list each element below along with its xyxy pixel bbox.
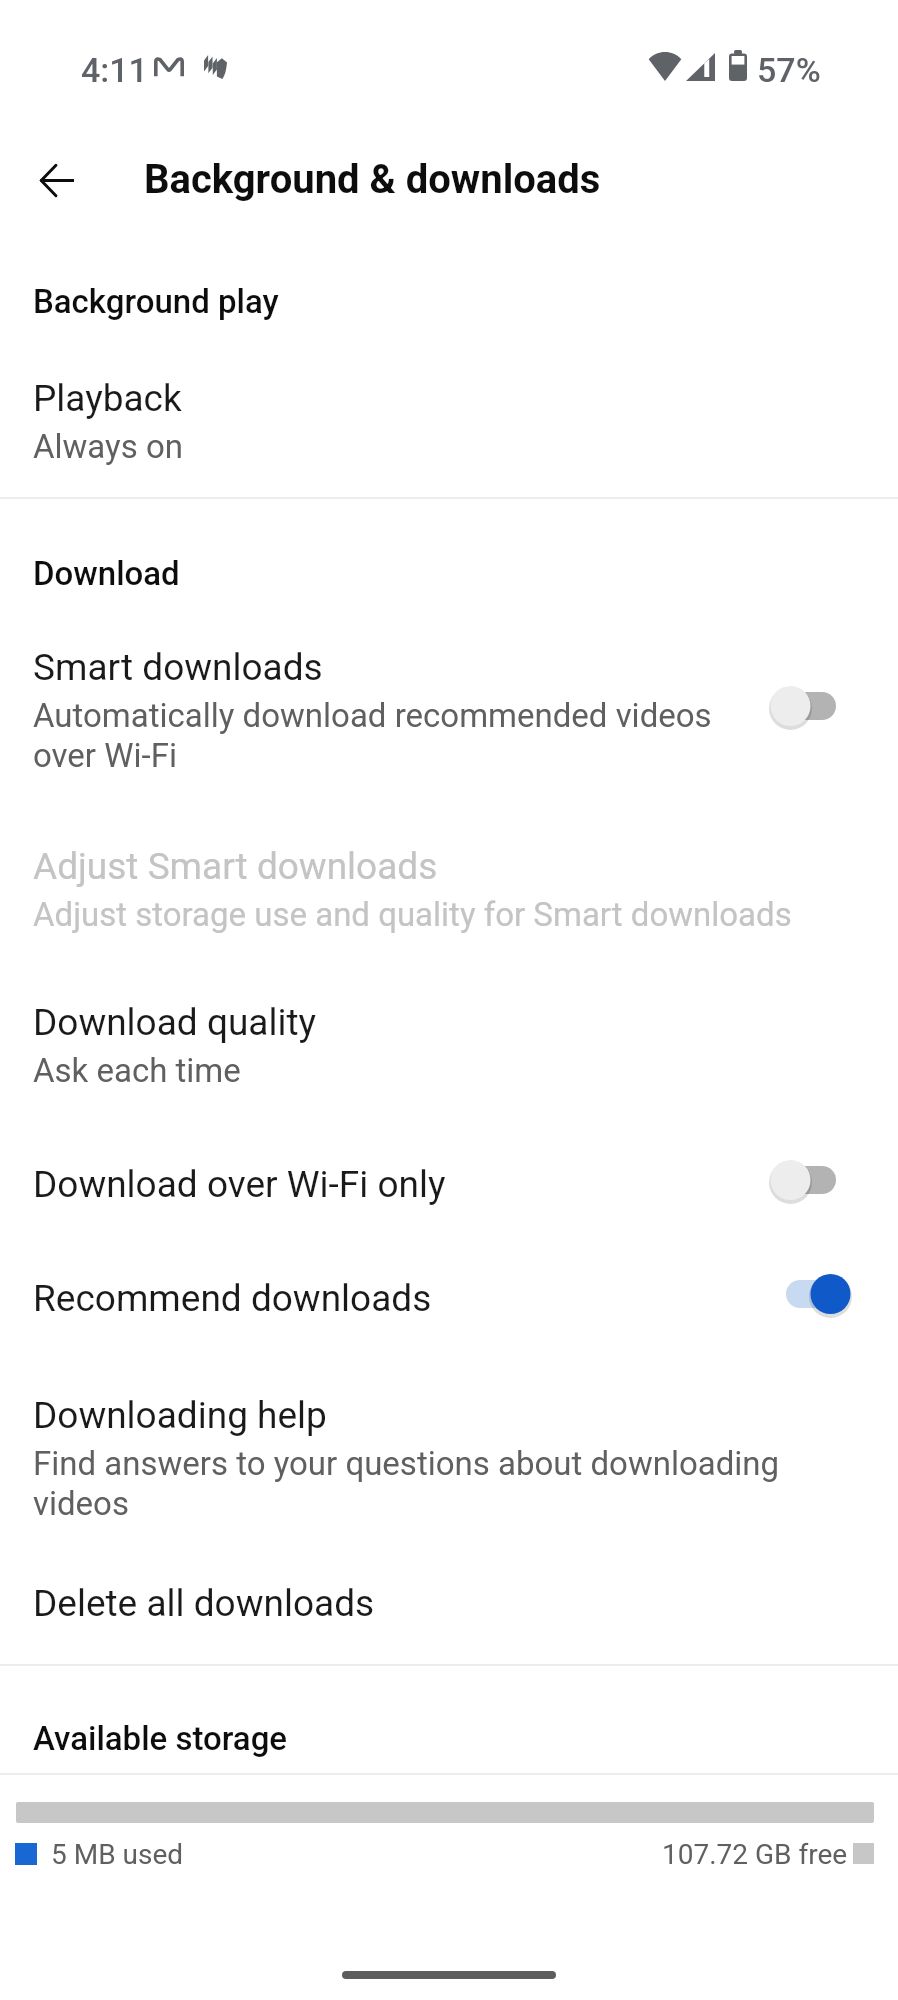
button[interactable]: Playback [0,365,898,471]
staticText: Playback [33,377,182,420]
staticText: 5 MB used [51,1838,184,1871]
button[interactable]: Recommend downloads [0,1265,898,1327]
staticText: 107.72 GB free [662,1838,848,1871]
staticText: Smart downloads [33,646,323,689]
button[interactable]: Smart downloads [0,634,898,780]
staticText: Find answers to your questions about dow… [33,1444,828,1524]
staticText: Download over Wi-Fi only [33,1163,446,1206]
staticText: Adjust Smart downloads [33,845,438,888]
button[interactable]: Toggle on [762,1264,862,1324]
staticText: Adjust storage use and quality for Smart… [33,895,792,934]
staticText: Ask each time [33,1051,241,1090]
staticText: Background & downloads [144,156,601,203]
staticText: Download quality [33,1001,317,1044]
staticText: Downloading help [33,1394,327,1437]
button[interactable]: Delete all downloads [0,1570,898,1630]
staticText: Download [33,554,180,593]
button[interactable]: Toggle off [762,676,862,736]
button[interactable]: Downloading help [0,1382,898,1532]
button[interactable]: Adjust Smart downloads [0,833,898,939]
button[interactable]: Back [22,145,92,215]
button[interactable]: Download quality [0,989,898,1095]
staticText: 57% [757,50,821,90]
button[interactable]: Download over Wi-Fi only [0,1151,898,1213]
staticText: Always on [33,427,183,466]
button[interactable]: Toggle off [762,1150,862,1210]
staticText: Available storage [33,1719,288,1758]
staticText: 4:11 [81,50,148,90]
staticText: Delete all downloads [33,1582,375,1625]
staticText: Automatically download recommended video… [33,696,738,776]
staticText: Background play [33,282,279,321]
staticText: Recommend downloads [33,1277,432,1320]
